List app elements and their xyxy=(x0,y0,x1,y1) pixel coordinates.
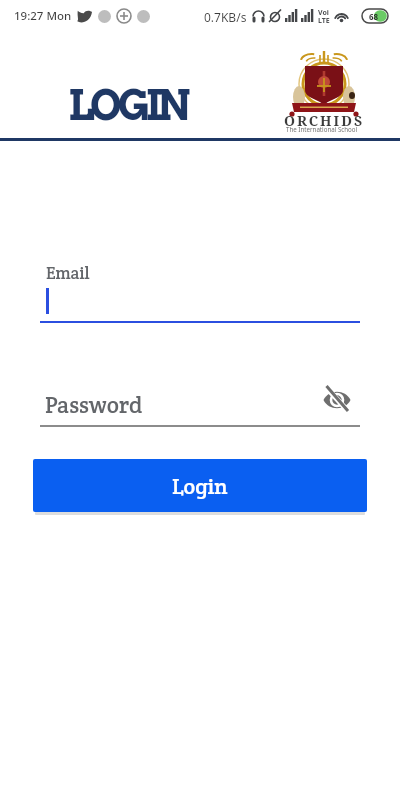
staticText: LOGIN xyxy=(68,81,187,130)
staticText: 19:27 Mon xyxy=(14,8,72,24)
staticText: Voi LTE xyxy=(318,8,330,25)
staticText: Email xyxy=(46,262,90,284)
staticText: The International School xyxy=(286,125,358,133)
button[interactable]: Login xyxy=(33,459,367,512)
staticText: 68 xyxy=(369,11,379,22)
staticText: ORCHIDS xyxy=(284,111,364,130)
button[interactable] xyxy=(322,387,352,413)
button[interactable] xyxy=(40,385,360,427)
button[interactable] xyxy=(40,255,360,323)
staticText: 0.7KB/s xyxy=(204,9,247,25)
staticText: Password xyxy=(45,390,143,419)
staticText: Login xyxy=(172,472,228,500)
